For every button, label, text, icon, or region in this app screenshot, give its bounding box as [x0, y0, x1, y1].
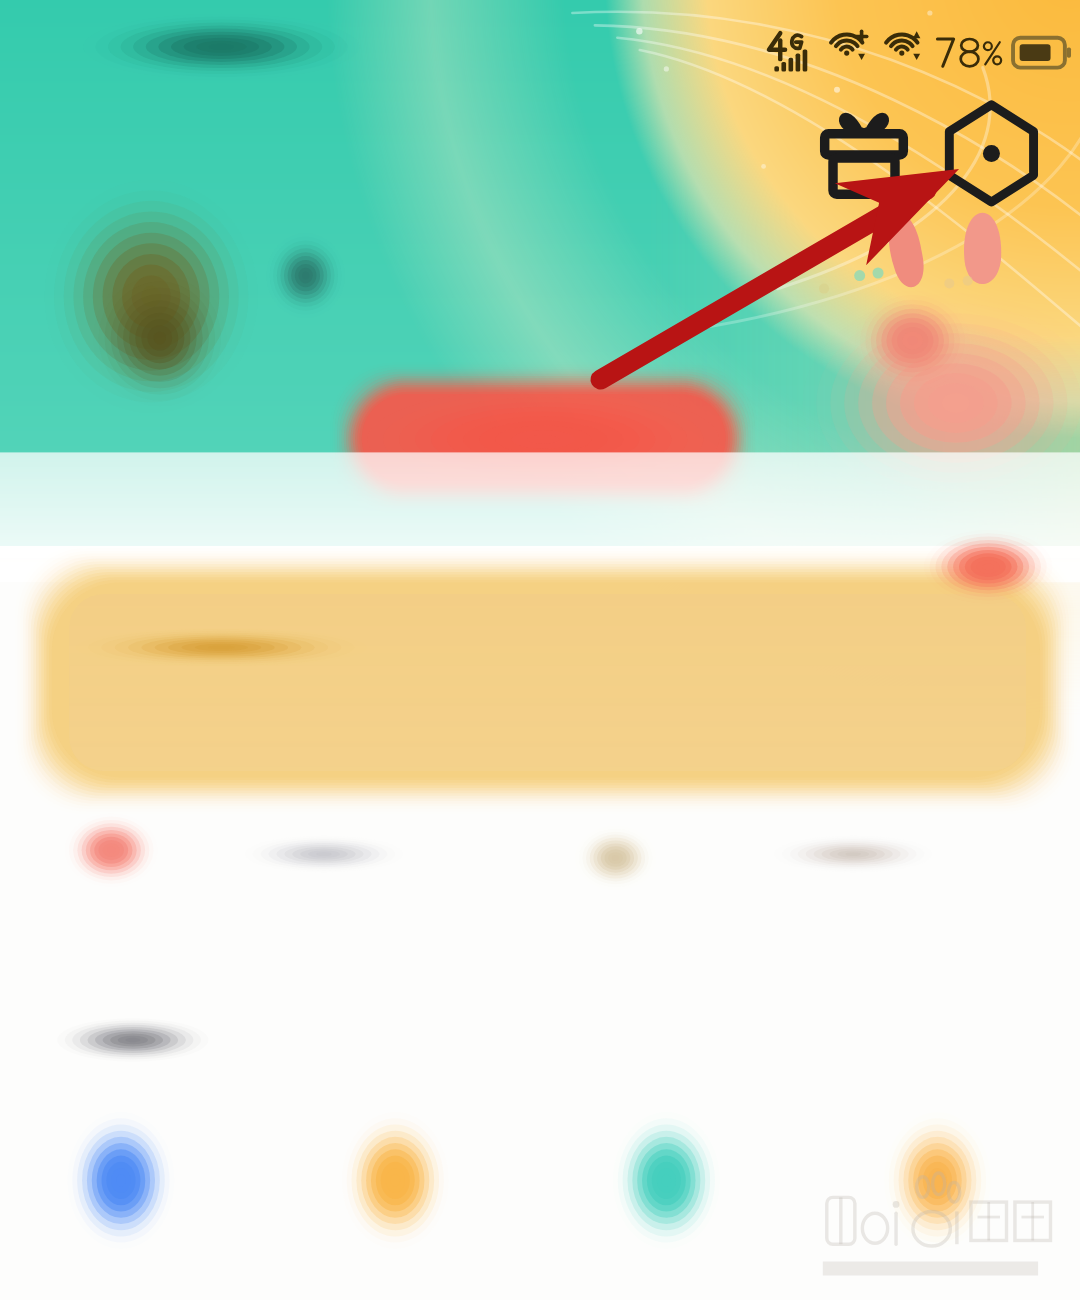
button[interactable]: Shortcut 4 — [856, 1115, 1018, 1245]
button[interactable]: Primary action — [356, 385, 729, 492]
button[interactable]: Shortcut 1 — [40, 1115, 202, 1245]
button[interactable]: Information card — [49, 575, 1043, 786]
button[interactable]: Shortcut 2 — [314, 1115, 476, 1245]
button[interactable]: Shortcut 3 — [585, 1115, 747, 1245]
button[interactable]: Gift — [821, 108, 910, 199]
button[interactable]: Settings — [948, 108, 1037, 199]
